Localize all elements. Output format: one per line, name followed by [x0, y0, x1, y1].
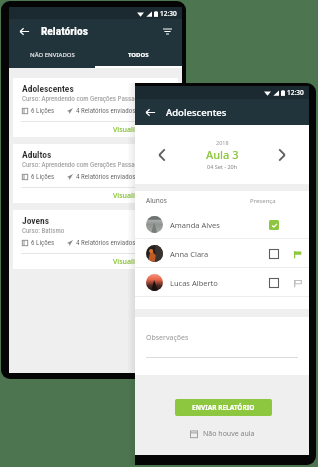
staticText: Observações — [146, 333, 189, 343]
button[interactable]: Adolescentes — [13, 78, 178, 137]
button[interactable]: Amanda Alves — [146, 210, 304, 239]
button[interactable]: Lucas Alberto — [146, 268, 304, 297]
button[interactable]: Flag — [290, 247, 304, 261]
button[interactable]: Visualizar — [110, 123, 149, 137]
button[interactable]: Jovens — [13, 210, 178, 269]
staticText: 4 Relatórios enviados — [76, 107, 136, 115]
staticText: 12:30 — [287, 88, 304, 97]
staticText: Aula 3 — [206, 147, 239, 162]
staticText: 6 Lições — [31, 173, 55, 181]
staticText: Adolescentes — [22, 83, 74, 94]
staticText: Visualizar — [113, 125, 146, 135]
button[interactable]: Previous lesson — [152, 145, 172, 165]
button[interactable]: Visualizar — [110, 255, 149, 269]
staticText: 12:30 — [160, 9, 177, 18]
staticText: Adultos — [22, 149, 52, 160]
staticText: Adolescentes — [166, 106, 227, 119]
button[interactable]: TODOS — [95, 42, 182, 68]
staticText: ENVIAR RELATÓRIO — [192, 403, 255, 412]
staticText: TODOS — [128, 51, 149, 59]
button[interactable]: Não houve aula — [135, 429, 309, 439]
staticText: 4 Relatórios enviados — [76, 173, 136, 181]
button[interactable]: NÃO ENVIADOS — [9, 42, 95, 68]
staticText: Não houve aula — [203, 429, 255, 439]
staticText: Relatórios — [41, 24, 88, 37]
button[interactable]: Adultos — [13, 144, 178, 203]
button[interactable]: Presence — [267, 247, 281, 261]
staticText: 6 Lições — [31, 107, 55, 115]
staticText: 04 Set - 20h — [207, 163, 238, 170]
button[interactable]: Visualizar — [110, 189, 149, 203]
button[interactable]: Anna Clara — [146, 239, 304, 268]
staticText: Lucas Alberto — [170, 278, 218, 288]
staticText: Visualizar — [113, 257, 146, 267]
staticText: NÃO ENVIADOS — [30, 51, 75, 59]
button[interactable]: Back — [142, 104, 158, 120]
staticText: Curso: Aprendendo com Gerações Passadas — [22, 161, 145, 169]
staticText: Visualizar — [113, 191, 146, 201]
button[interactable]: Flag — [290, 276, 304, 290]
staticText: Anna Clara — [170, 249, 209, 259]
button[interactable]: Presence — [267, 276, 281, 290]
staticText: 2018 — [216, 139, 229, 146]
staticText: Jovens — [22, 215, 50, 226]
staticText: Curso: Aprendendo com Gerações Passadas — [22, 95, 145, 103]
button[interactable]: Filter — [159, 23, 175, 39]
staticText: Amanda Alves — [170, 220, 220, 230]
staticText: 6 Lições — [31, 239, 55, 247]
button[interactable]: Next lesson — [272, 145, 292, 165]
button[interactable]: ENVIAR RELATÓRIO — [175, 399, 272, 416]
staticText: 4 Relatórios enviados — [76, 239, 136, 247]
staticText: Alunos — [146, 196, 167, 205]
button[interactable]: Back — [16, 23, 32, 39]
button[interactable]: Presence — [267, 218, 281, 232]
staticText: Curso: Batismo — [22, 227, 65, 235]
staticText: Presença — [250, 197, 276, 205]
